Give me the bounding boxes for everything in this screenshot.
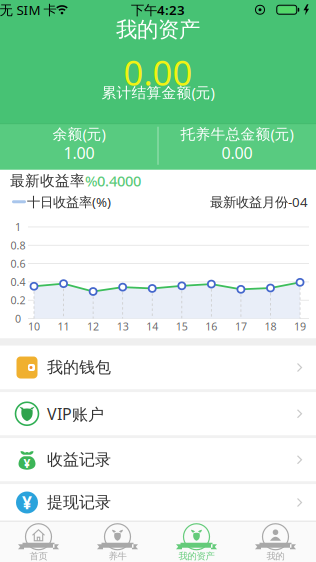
staticText: 0.4 [10,275,25,289]
staticText: 我的 [266,550,284,562]
staticText: 14 [146,319,158,333]
staticText: 我的资产 [116,17,200,43]
button[interactable]: 我的钱包 [0,346,316,389]
staticText: %0.4000 [85,171,141,190]
staticText: 我的钱包 [47,358,111,377]
staticText: 1 [15,220,21,234]
button[interactable]: 我的资产 [166,522,228,562]
staticText: 10 [28,319,40,333]
staticText: 15 [176,319,188,333]
button[interactable]: 首页 [8,522,70,562]
staticText: 0 [15,311,21,326]
staticText: 下午4:23 [131,1,185,19]
staticText: VIP账户 [47,403,104,424]
staticText: 无 SIM 卡 [0,1,56,19]
staticText: 首页 [29,550,47,562]
staticText: 0.00 [123,49,192,95]
staticText: 托养牛总金额(元) [180,124,293,143]
staticText: ¥ [22,491,32,514]
button[interactable]: 养牛 [87,522,149,562]
staticText: 提现记录 [47,493,111,512]
staticText: 养牛 [108,550,126,562]
staticText: 0.2 [10,293,25,307]
staticText: ¥ [23,455,30,471]
button[interactable]: 我的 [245,522,307,562]
button[interactable]: VIP账户 [0,392,316,435]
staticText: 18 [264,319,276,333]
staticText: 0.00 [221,142,252,163]
staticText: 16 [205,319,217,333]
staticText: 19 [294,319,306,333]
staticText: 0.6 [10,256,25,271]
staticText: 最新收益月份-04 [210,193,308,211]
staticText: 最新收益率 [10,172,85,190]
staticText: 17 [235,319,247,333]
staticText: 收益记录 [47,450,111,470]
staticText: 十日收益率(%) [27,193,111,211]
staticText: 12 [87,319,99,333]
staticText: 0.8 [10,238,25,252]
staticText: 累计结算金额(元) [101,82,214,102]
button[interactable]: ¥ [0,484,316,521]
staticText: 13 [117,319,129,333]
staticText: 我的资产 [178,550,214,562]
staticText: 11 [58,319,70,333]
staticText: 1.00 [63,142,94,163]
staticText: 余额(元) [52,124,105,143]
button[interactable]: ¥ [0,438,316,481]
